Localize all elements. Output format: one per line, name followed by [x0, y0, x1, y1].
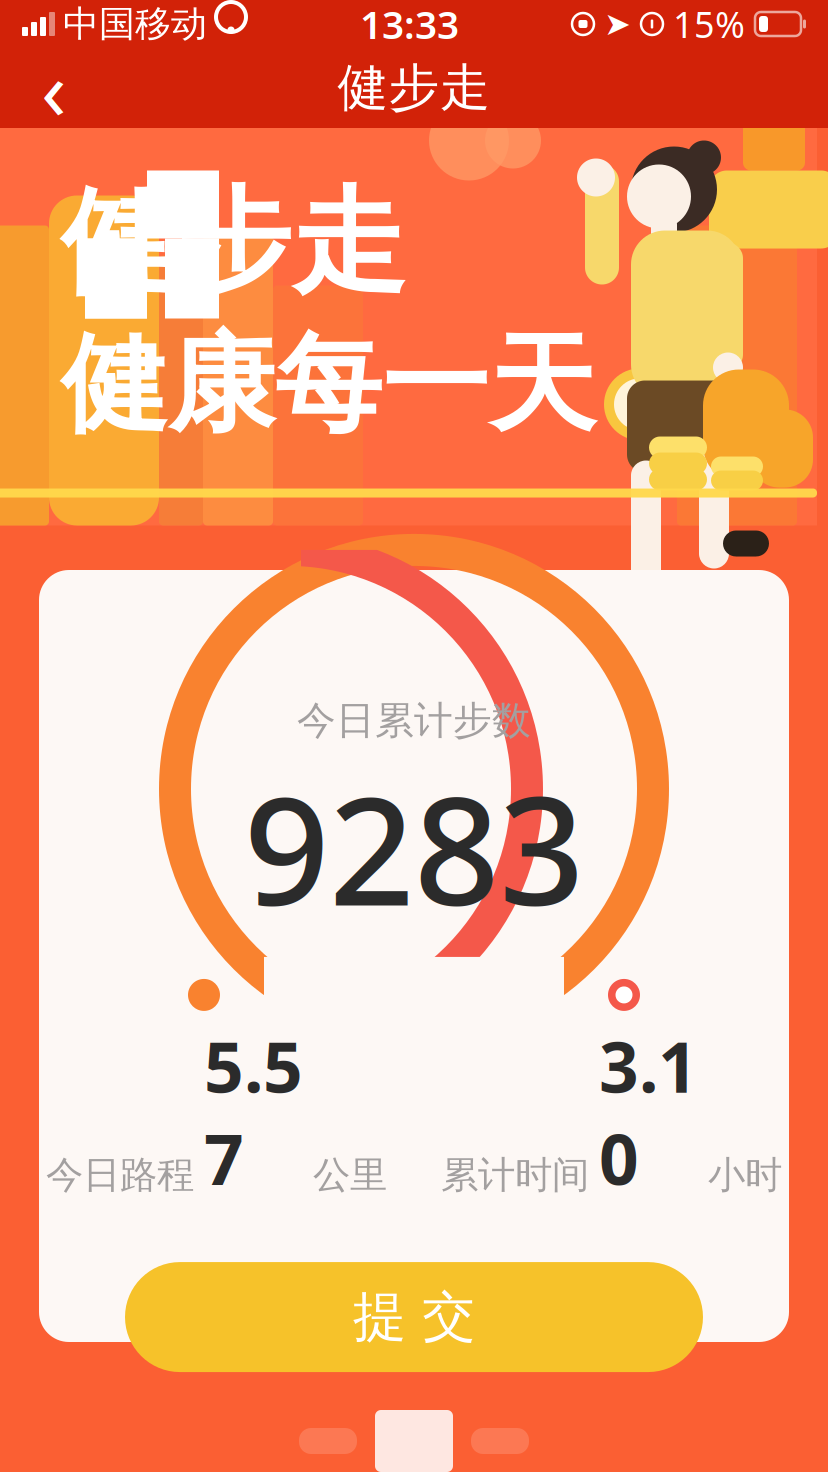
button[interactable]: Back [14, 48, 94, 128]
staticText: 健康每一天 [61, 319, 596, 450]
staticText: 公里 [313, 1152, 387, 1198]
staticText: 5.57 [204, 1020, 303, 1204]
staticText: 9283 [244, 748, 584, 947]
staticText: 提 交 [353, 1284, 475, 1350]
staticText: ‹ [41, 33, 67, 143]
staticText: 健步走 [61, 172, 406, 313]
staticText: 累计时间 [441, 1152, 589, 1198]
staticText: 3.10 [599, 1020, 698, 1204]
staticText: 13:33 [360, 0, 459, 50]
staticText: 健步走 [337, 57, 490, 119]
staticText: 今日路程 [46, 1152, 194, 1198]
staticText: 今日累计步数 [297, 697, 531, 744]
staticText: 小时 [708, 1152, 782, 1198]
staticText: ➤ [604, 6, 631, 42]
staticText: 中国移动 [63, 2, 207, 46]
staticText: 15% [673, 0, 745, 48]
button[interactable]: 提 交 [125, 1262, 703, 1372]
